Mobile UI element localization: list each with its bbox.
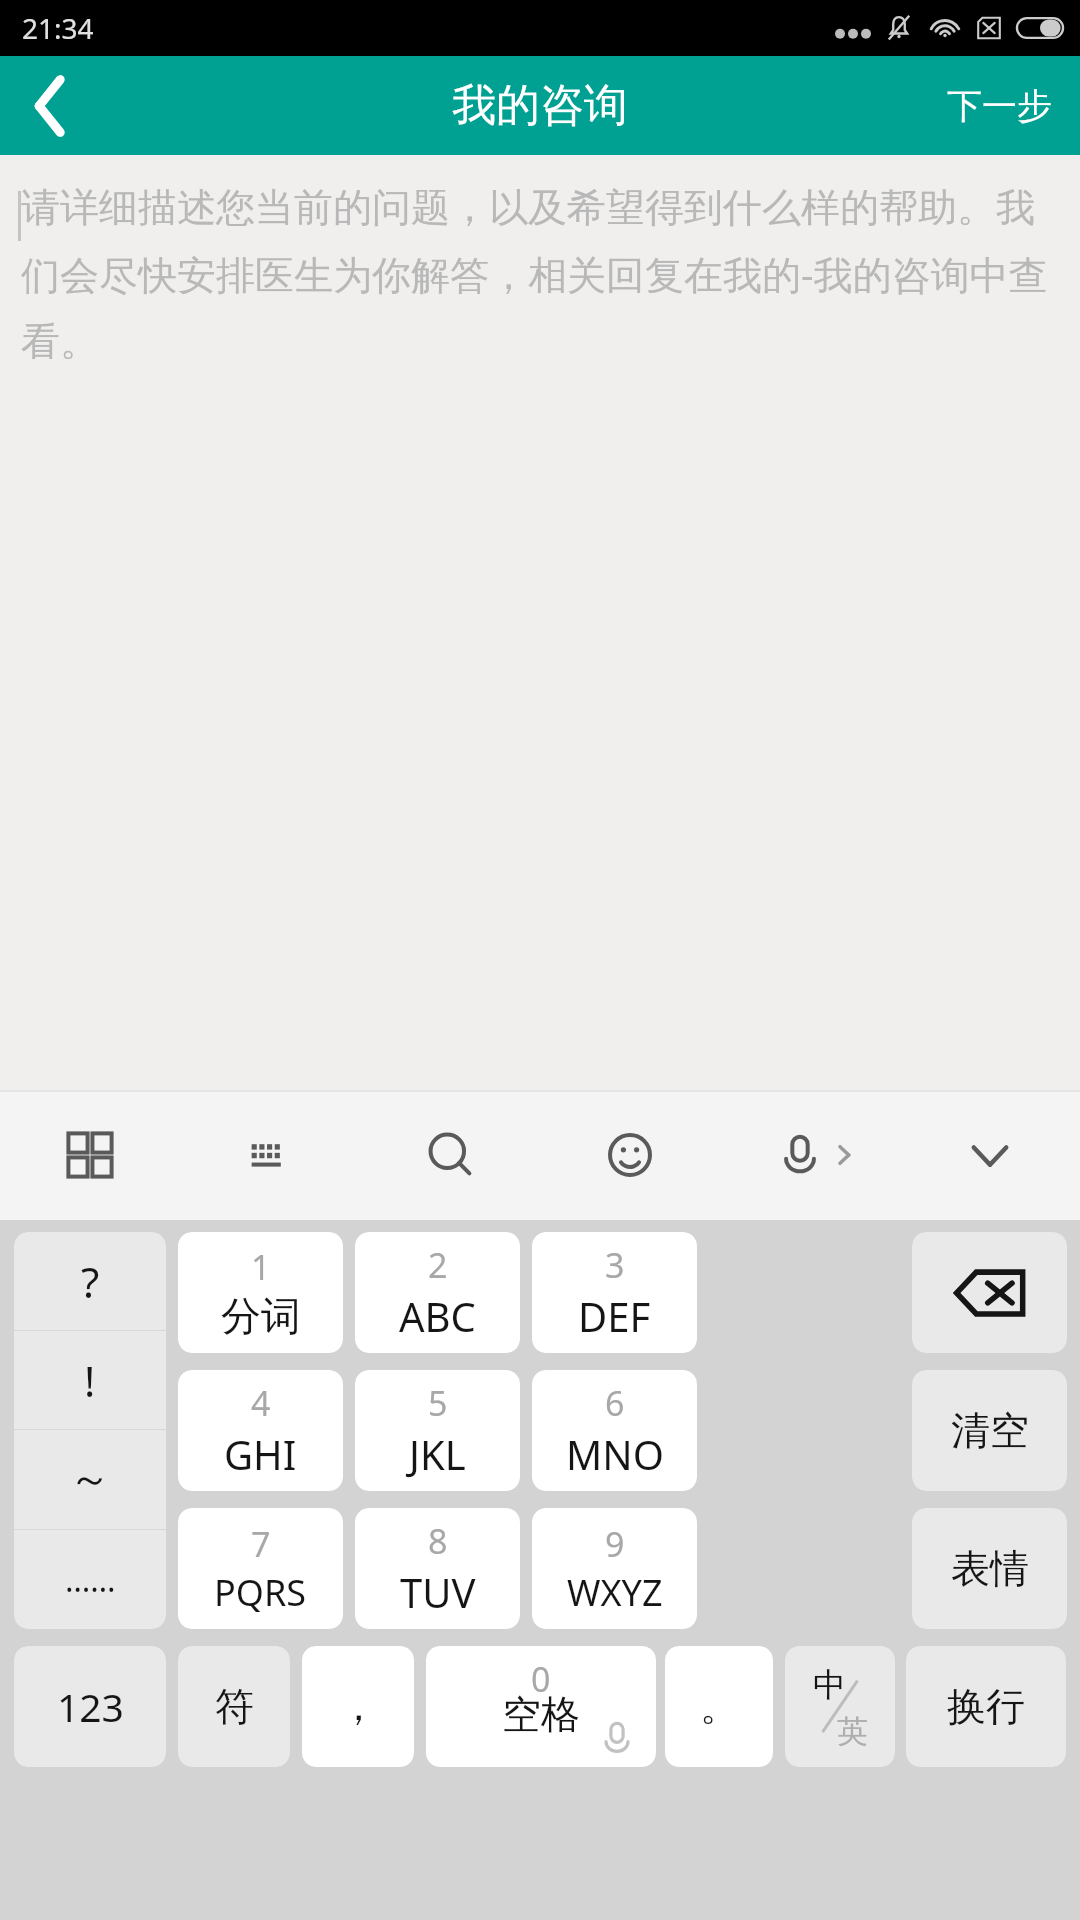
staticText: 清空 [951, 1406, 1029, 1455]
staticText: 分词 [221, 1291, 301, 1341]
button[interactable]: Keyboard layout [180, 1090, 360, 1220]
button[interactable]: 换行 [906, 1646, 1066, 1772]
button[interactable]: …… [14, 1530, 166, 1629]
button[interactable]: 4 [178, 1370, 343, 1496]
staticText: WXYZ [567, 1568, 663, 1617]
staticText: 空格 [502, 1690, 580, 1739]
button[interactable]: 8 [355, 1508, 520, 1634]
button[interactable]: 请详细描述您当前的问题，以及希望得到什么样的帮助。我们会尽快安排医生为你解答，相… [0, 155, 1080, 1090]
button[interactable]: Back [0, 56, 100, 155]
staticText: 4 [251, 1380, 271, 1426]
staticText: MNO [566, 1427, 664, 1481]
staticText: JKL [409, 1427, 466, 1481]
button[interactable]: Backspace [912, 1232, 1067, 1358]
staticText: 。 [700, 1682, 739, 1731]
staticText: 请详细描述您当前的问题，以及希望得到什么样的帮助。我们会尽快安排医生为你解答，相… [21, 183, 1056, 367]
staticText: GHI [224, 1427, 297, 1481]
staticText: ABC [399, 1289, 476, 1343]
button[interactable]: 123 [14, 1646, 166, 1772]
button[interactable]: 表情 [912, 1508, 1067, 1634]
button[interactable]: 符 [178, 1646, 290, 1772]
staticText: …… [65, 1558, 116, 1602]
button[interactable]: 0 [426, 1646, 656, 1772]
staticText: ， [339, 1682, 378, 1731]
staticText: 符 [215, 1682, 254, 1731]
button[interactable]: ～ [14, 1430, 166, 1529]
button[interactable]: ? [14, 1232, 166, 1330]
staticText: DEF [578, 1289, 651, 1343]
button[interactable]: Voice input [768, 1123, 832, 1187]
staticText: 5 [428, 1380, 448, 1426]
staticText: ～ [69, 1453, 111, 1506]
button[interactable]: 3 [532, 1232, 697, 1358]
staticText: ? [81, 1253, 100, 1310]
button[interactable]: ， [302, 1646, 414, 1772]
staticText: 1 [251, 1244, 271, 1290]
button[interactable]: 下一步 [919, 56, 1080, 155]
staticText: 中 [813, 1664, 846, 1706]
button[interactable]: 6 [532, 1370, 697, 1496]
staticText: 2 [428, 1242, 448, 1288]
button[interactable]: Hide keyboard [900, 1090, 1080, 1220]
staticText: 123 [57, 1680, 124, 1733]
staticText: 换行 [947, 1682, 1025, 1731]
staticText: TUV [400, 1565, 476, 1619]
button[interactable]: ! [14, 1331, 166, 1429]
button[interactable]: Emoji [540, 1090, 720, 1220]
button[interactable]: Chinese English toggle [785, 1646, 895, 1772]
button[interactable]: 2 [355, 1232, 520, 1358]
button[interactable]: Apps [0, 1090, 180, 1220]
button[interactable]: 5 [355, 1370, 520, 1496]
staticText: 0 [531, 1656, 551, 1702]
staticText: 6 [605, 1380, 625, 1426]
staticText: 我的咨询 [452, 78, 628, 133]
staticText: PQRS [214, 1568, 307, 1617]
staticText: 8 [428, 1518, 448, 1564]
button[interactable]: Search [360, 1090, 540, 1220]
staticText: 7 [251, 1521, 271, 1567]
staticText: 表情 [951, 1544, 1029, 1593]
button[interactable]: 1 [178, 1232, 343, 1358]
staticText: 下一步 [947, 84, 1052, 128]
staticText: 3 [605, 1242, 625, 1288]
staticText: 21:34 [22, 9, 94, 47]
button[interactable]: 清空 [912, 1370, 1067, 1496]
button[interactable]: 。 [665, 1646, 773, 1772]
button[interactable]: 9 [532, 1508, 697, 1634]
staticText: 英 [837, 1712, 868, 1751]
staticText: 9 [605, 1521, 625, 1567]
staticText: ! [84, 1352, 96, 1409]
button[interactable]: 7 [178, 1508, 343, 1634]
